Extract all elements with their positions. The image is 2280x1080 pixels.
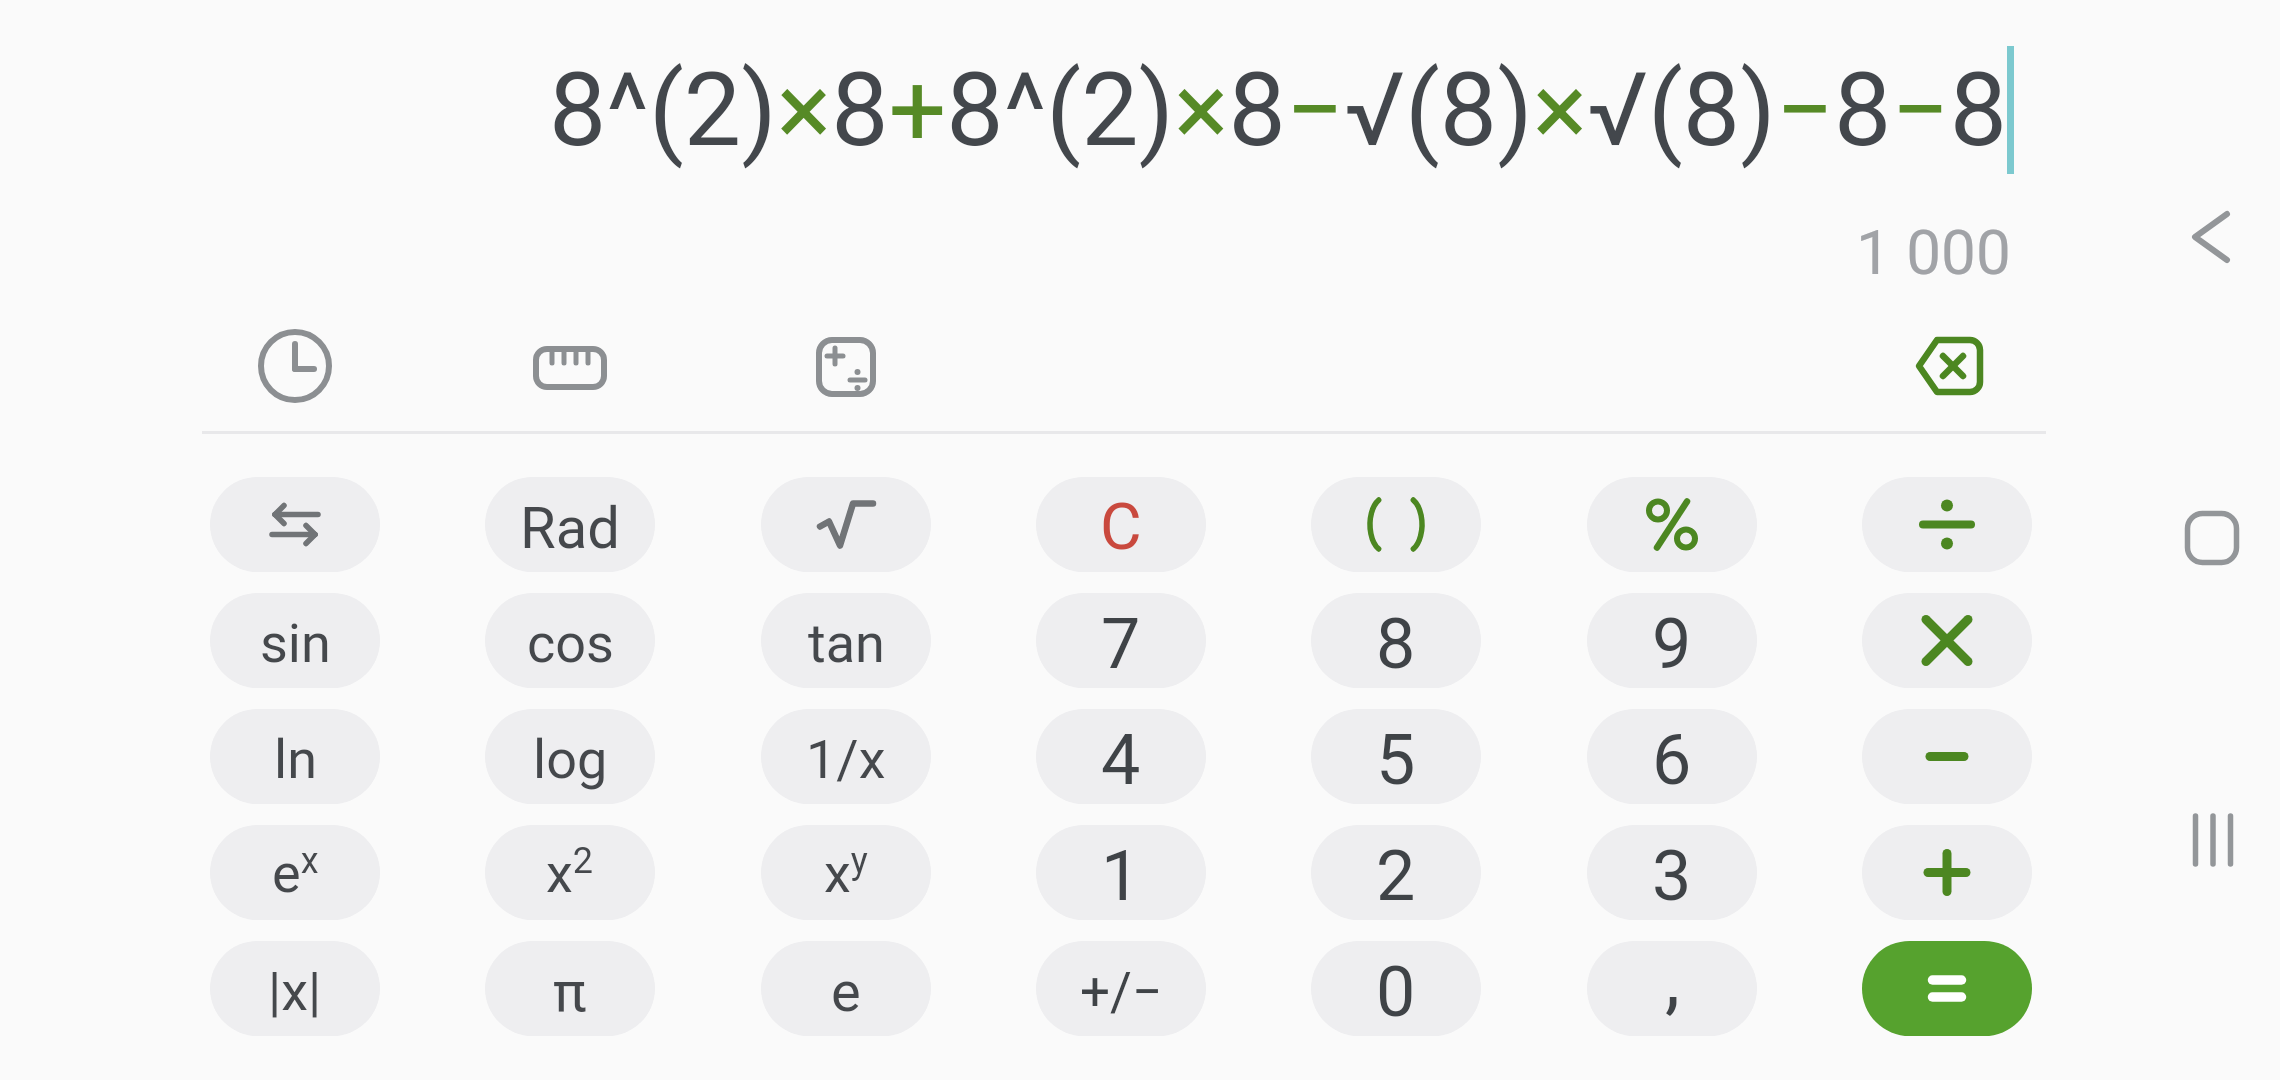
button[interactable] (761, 477, 931, 572)
staticText: ln (274, 728, 317, 791)
button[interactable] (2170, 197, 2250, 277)
button[interactable]: ln (210, 709, 380, 804)
button[interactable]: 4 (1036, 709, 1206, 804)
button[interactable]: 2 (1311, 825, 1481, 920)
button[interactable]: π (485, 941, 655, 1036)
button[interactable] (1910, 326, 1990, 406)
button[interactable]: log (485, 709, 655, 804)
staticText: 1 000 (1856, 216, 2011, 289)
button[interactable]: 9 (1587, 593, 1757, 688)
button[interactable]: C (1036, 477, 1206, 572)
staticText: xy (824, 840, 868, 905)
staticText: 0 (1376, 951, 1416, 1033)
button[interactable] (1862, 941, 2032, 1036)
staticText: 1/x (806, 728, 886, 791)
staticText: 2 (1376, 835, 1416, 917)
button[interactable]: 1 (1036, 825, 1206, 920)
button[interactable]: xy (761, 825, 931, 920)
button[interactable]: e (761, 941, 931, 1036)
staticText: 4 (1101, 719, 1141, 801)
staticText: |x| (268, 960, 322, 1023)
button[interactable] (806, 327, 886, 407)
button[interactable] (210, 477, 380, 572)
button[interactable]: 8 (1311, 593, 1481, 688)
button[interactable] (1862, 709, 2032, 804)
staticText: 1 (1101, 835, 1141, 917)
staticText: π (553, 959, 587, 1025)
button[interactable]: 6 (1587, 709, 1757, 804)
staticText: 9 (1652, 603, 1692, 685)
staticText: x2 (546, 840, 594, 905)
staticText: sin (260, 612, 331, 675)
staticText: Rad (520, 494, 620, 562)
staticText: 5 (1376, 719, 1416, 801)
staticText: log (533, 728, 608, 791)
staticText: e (831, 959, 861, 1025)
button[interactable]: ex (210, 825, 380, 920)
button[interactable] (2172, 498, 2252, 578)
button[interactable]: |x| (210, 941, 380, 1036)
button[interactable] (1587, 477, 1757, 572)
button[interactable]: , (1587, 941, 1757, 1036)
staticText: ex (272, 840, 319, 905)
staticText: 3 (1652, 835, 1692, 917)
staticText: +/− (1080, 961, 1163, 1023)
button[interactable] (1862, 825, 2032, 920)
staticText: 6 (1652, 719, 1692, 801)
button[interactable]: Rad (485, 477, 655, 572)
button[interactable] (1311, 477, 1481, 572)
button[interactable]: 7 (1036, 593, 1206, 688)
button[interactable]: +/− (1036, 941, 1206, 1036)
button[interactable] (2173, 800, 2253, 880)
button[interactable]: 5 (1311, 709, 1481, 804)
staticText: 8^(2)×8+8^(2)×8−√(8)×√(8)−8−8 (549, 50, 2007, 170)
button[interactable]: cos (485, 593, 655, 688)
button[interactable] (530, 328, 610, 408)
button[interactable]: 1/x (761, 709, 931, 804)
button[interactable]: x2 (485, 825, 655, 920)
button[interactable] (1862, 477, 2032, 572)
button[interactable] (1862, 593, 2032, 688)
button[interactable]: sin (210, 593, 380, 688)
staticText: C (1100, 490, 1142, 565)
button[interactable]: tan (761, 593, 931, 688)
staticText: , (1665, 941, 1680, 1023)
staticText: tan (808, 612, 885, 675)
button[interactable]: 3 (1587, 825, 1757, 920)
staticText: 7 (1101, 603, 1141, 685)
button[interactable] (255, 326, 335, 406)
staticText: cos (527, 612, 614, 675)
staticText: 8 (1376, 603, 1416, 685)
button[interactable]: 0 (1311, 941, 1481, 1036)
